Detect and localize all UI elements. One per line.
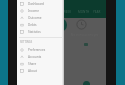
button[interactable]: Share <box>17 60 64 67</box>
staticText: Outcome <box>28 16 42 20</box>
staticText: No transactions yet <box>63 33 106 37</box>
staticText: Share <box>28 62 37 66</box>
staticText: Dashboard <box>28 2 45 6</box>
button[interactable]: Dashboard <box>17 0 64 7</box>
staticText: Debts <box>28 23 37 27</box>
button[interactable]: Debts <box>17 21 64 28</box>
button[interactable]: WEEK <box>63 10 72 14</box>
button[interactable]: Outcome <box>17 14 64 21</box>
button[interactable]: Income <box>17 7 64 14</box>
staticText: WEEK <box>63 10 72 14</box>
staticText: YEAR <box>93 10 101 14</box>
button[interactable]: Add transaction <box>83 81 90 85</box>
staticText: Statistics <box>28 30 41 34</box>
staticText: Income <box>28 9 39 13</box>
staticText: Preferences <box>28 48 46 52</box>
staticText: SETTINGS <box>20 40 33 44</box>
button[interactable]: About <box>17 67 64 74</box>
button[interactable]: Category <box>84 43 88 46</box>
button[interactable]: MONTH <box>78 10 90 14</box>
button[interactable]: Preferences <box>17 46 64 53</box>
button[interactable]: Statistics <box>17 28 64 35</box>
button[interactable]: Accounts <box>17 53 64 60</box>
staticText: MONTH <box>78 10 90 14</box>
staticText: Accounts <box>28 55 42 59</box>
staticText: About <box>28 69 37 73</box>
button[interactable]: YEAR <box>93 10 101 14</box>
